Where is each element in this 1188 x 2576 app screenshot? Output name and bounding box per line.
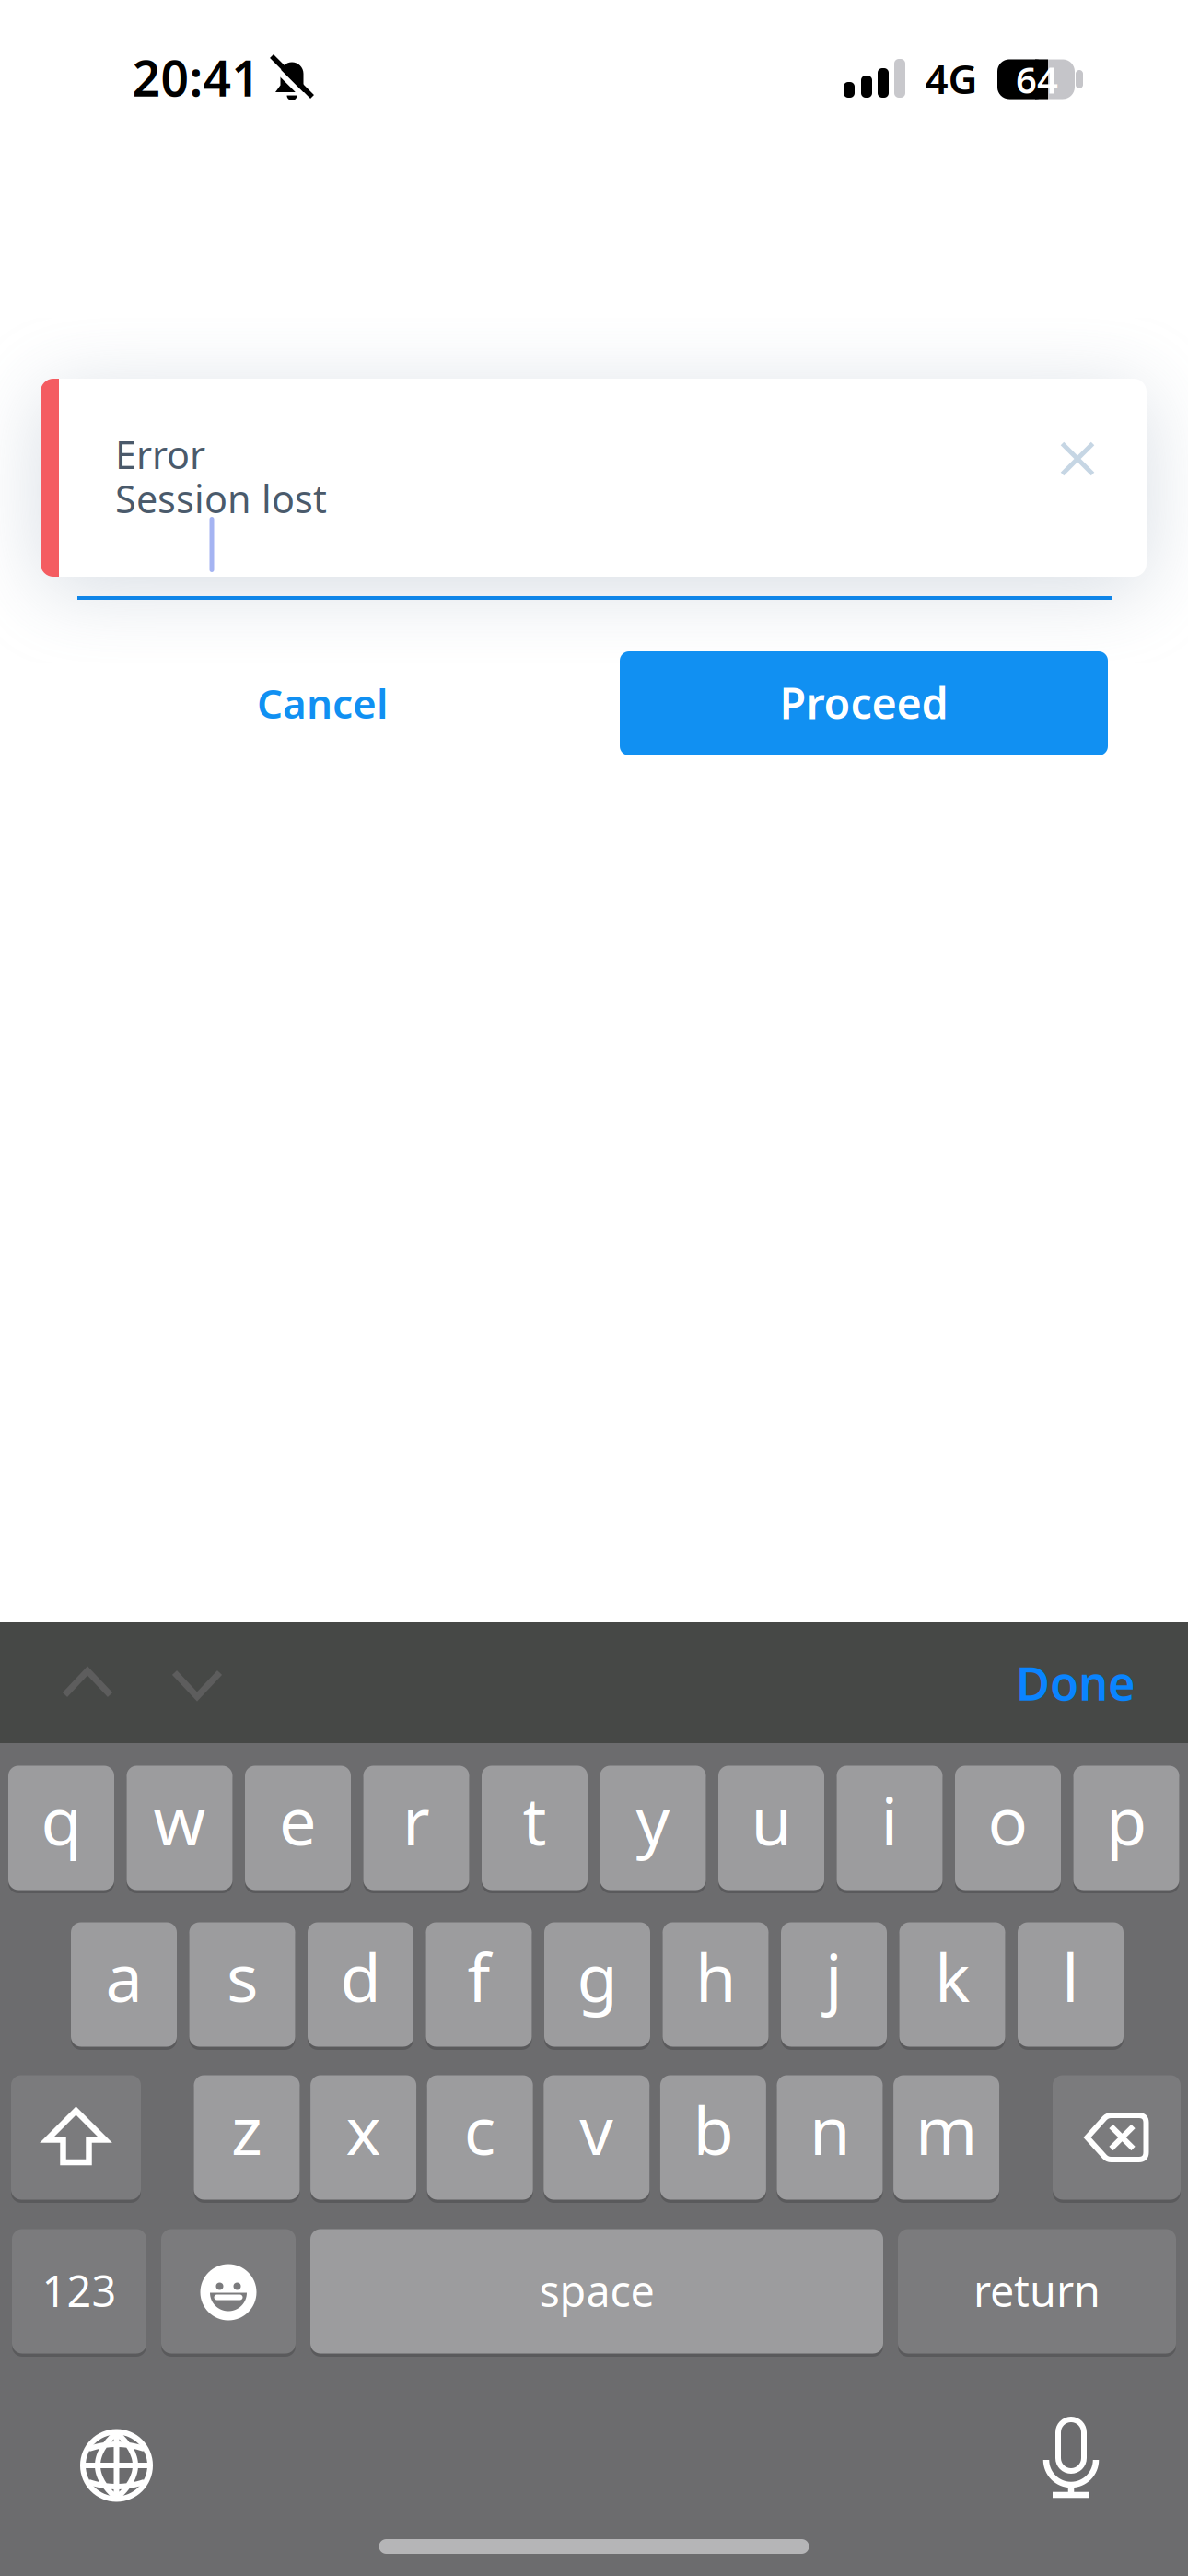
button[interactable]: 123	[12, 2227, 146, 2355]
button[interactable]: Cancel	[257, 676, 388, 730]
staticText: w	[153, 1776, 206, 1864]
staticText: Proceed	[780, 674, 948, 731]
button[interactable]: u	[718, 1764, 824, 1892]
button[interactable]	[77, 596, 1112, 600]
button[interactable]	[80, 2429, 153, 2502]
button[interactable]: v	[544, 2073, 650, 2201]
button[interactable]: d	[308, 1920, 413, 2049]
staticText: 64	[1016, 55, 1058, 104]
staticText: p	[1106, 1776, 1147, 1864]
staticText: k	[935, 1932, 970, 2020]
staticText: Session lost	[115, 473, 327, 524]
button[interactable]	[63, 1668, 112, 1697]
staticText: y	[636, 1776, 670, 1864]
staticText: 20:41	[132, 45, 260, 110]
button[interactable]: a	[71, 1920, 177, 2049]
staticText: x	[346, 2085, 381, 2173]
button[interactable]: w	[127, 1764, 233, 1892]
staticText: f	[467, 1932, 490, 2020]
staticText: Error	[115, 429, 205, 480]
staticText: 4G	[925, 51, 978, 105]
staticText: u	[751, 1776, 792, 1864]
staticText: m	[915, 2085, 977, 2173]
button[interactable]: space	[310, 2227, 883, 2355]
staticText: g	[577, 1932, 617, 2020]
button[interactable]: g	[544, 1920, 650, 2049]
staticText: s	[227, 1932, 258, 2020]
staticText: c	[464, 2085, 496, 2173]
button[interactable]: Proceed	[620, 651, 1108, 755]
button[interactable]: b	[660, 2073, 766, 2201]
staticText: a	[105, 1932, 142, 2020]
button[interactable]: q	[8, 1764, 114, 1892]
button[interactable]: x	[310, 2073, 416, 2201]
button[interactable]	[1034, 2410, 1108, 2512]
staticText: r	[402, 1776, 430, 1864]
button[interactable]	[1062, 444, 1093, 474]
button[interactable]	[1053, 2073, 1181, 2201]
staticText: o	[988, 1776, 1028, 1864]
staticText: v	[580, 2085, 614, 2173]
staticText: Done	[1016, 1651, 1136, 1713]
button[interactable]: p	[1073, 1764, 1179, 1892]
button[interactable]: o	[955, 1764, 1061, 1892]
staticText: Cancel	[257, 676, 388, 730]
staticText: q	[41, 1776, 82, 1864]
button[interactable]: m	[893, 2073, 999, 2201]
button[interactable]: k	[899, 1920, 1005, 2049]
button[interactable]: e	[245, 1764, 351, 1892]
button[interactable]: z	[194, 2073, 300, 2201]
staticText: h	[695, 1932, 736, 2020]
staticText: space	[539, 2262, 654, 2319]
button[interactable]: j	[781, 1920, 887, 2049]
button[interactable]	[161, 2227, 296, 2355]
button[interactable]: s	[189, 1920, 295, 2049]
staticText: t	[523, 1776, 547, 1864]
staticText: n	[809, 2085, 850, 2173]
button[interactable]: n	[777, 2073, 883, 2201]
button[interactable]	[173, 1671, 221, 1699]
button[interactable]: f	[426, 1920, 532, 2049]
staticText: e	[279, 1776, 317, 1864]
staticText: j	[825, 1932, 843, 2020]
staticText: z	[231, 2085, 262, 2173]
staticText: d	[340, 1932, 381, 2020]
button[interactable]: l	[1018, 1920, 1124, 2049]
staticText: 123	[42, 2262, 116, 2319]
staticText: b	[693, 2085, 733, 2173]
staticText: l	[1062, 1932, 1079, 2020]
button[interactable]: t	[482, 1764, 588, 1892]
button[interactable]: i	[837, 1764, 943, 1892]
button[interactable]: r	[363, 1764, 469, 1892]
button[interactable]: Done	[1016, 1651, 1136, 1713]
button[interactable]: h	[663, 1920, 769, 2049]
button[interactable]: c	[427, 2073, 533, 2201]
button[interactable]: return	[898, 2227, 1176, 2355]
staticText: return	[973, 2262, 1101, 2319]
button[interactable]: y	[600, 1764, 706, 1892]
button[interactable]	[11, 2073, 141, 2201]
staticText: i	[881, 1776, 898, 1864]
